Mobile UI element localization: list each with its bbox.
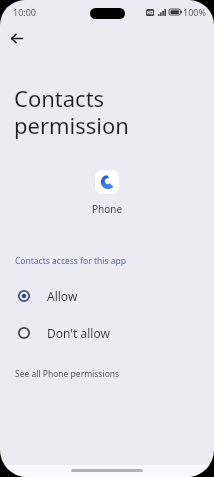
staticText: Contacts access for this app bbox=[15, 255, 126, 267]
button[interactable]: Don't allow bbox=[0, 318, 214, 347]
staticText: Contacts permission bbox=[14, 83, 129, 140]
staticText: Allow bbox=[47, 288, 78, 304]
staticText: 10:00 bbox=[13, 6, 37, 18]
button[interactable]: Back bbox=[3, 24, 31, 52]
staticText: See all Phone permissions bbox=[15, 368, 120, 380]
staticText: Phone bbox=[92, 202, 123, 216]
staticText: 100% bbox=[183, 6, 206, 18]
button[interactable]: See all Phone permissions bbox=[0, 363, 214, 385]
button[interactable]: Allow bbox=[0, 281, 214, 310]
staticText: Don't allow bbox=[47, 325, 110, 341]
